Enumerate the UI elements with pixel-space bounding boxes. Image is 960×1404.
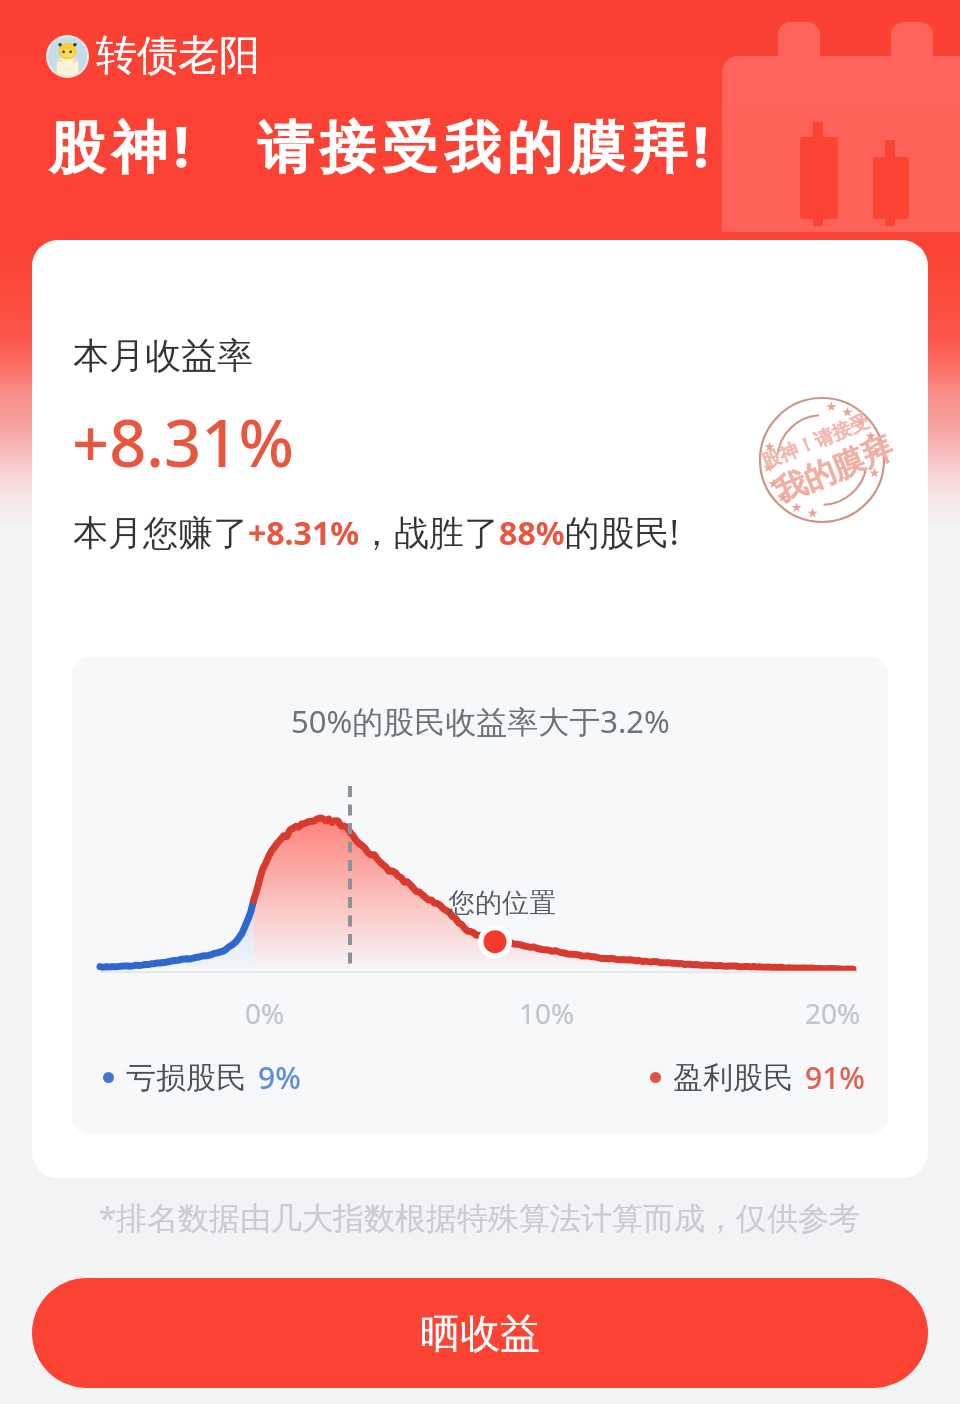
- staticText: 股神！请接受: [758, 409, 873, 474]
- staticText: 50%的股民收益率大于3.2%: [291, 700, 670, 742]
- staticText: 20%: [805, 994, 861, 1032]
- staticText: 0%: [245, 994, 285, 1032]
- staticText: 亏损股民: [126, 1059, 246, 1097]
- staticText: 本月您赚了+8.31%，战胜了88%的股民!: [73, 508, 679, 556]
- button[interactable]: 晒收益: [32, 1278, 928, 1388]
- staticText: 转债老阳: [96, 30, 260, 82]
- other: User avatar: [48, 37, 87, 76]
- staticText: 我的膜拜: [769, 428, 899, 511]
- staticText: *排名数据由几大指数根据特殊算法计算而成，仅供参考: [99, 1196, 861, 1238]
- staticText: 晒收益: [420, 1308, 540, 1358]
- staticText: 您的位置: [448, 886, 556, 920]
- button[interactable]: User avatar: [46, 30, 260, 82]
- staticText: +8.31%: [72, 398, 294, 487]
- staticText: 91%: [805, 1057, 865, 1098]
- staticText: 本月收益率: [73, 333, 253, 378]
- staticText: 股神! 请接受我的膜拜!: [49, 107, 715, 183]
- staticText: 10%: [519, 994, 575, 1032]
- staticText: 9%: [258, 1057, 301, 1098]
- staticText: 盈利股民: [673, 1059, 793, 1097]
